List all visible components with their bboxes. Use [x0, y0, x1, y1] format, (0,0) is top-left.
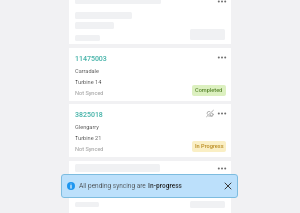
button[interactable]: 3825018: [69, 104, 231, 157]
button[interactable]: More options: [215, 51, 229, 63]
button[interactable]: Close: [222, 180, 234, 192]
staticText: Not Synced: [75, 146, 104, 153]
staticText: Completed: [195, 87, 223, 94]
button[interactable]: In Progress: [192, 141, 226, 152]
button[interactable]: All pending syncing are: [61, 174, 238, 198]
button[interactable]: 11475003: [69, 48, 231, 101]
staticText: 11475003: [75, 55, 107, 63]
staticText: Turbine 14: [75, 79, 102, 86]
button[interactable]: Completed: [192, 85, 226, 96]
staticText: In-progress: [148, 182, 182, 190]
staticText: In Progress: [195, 143, 224, 150]
button[interactable]: More options: [215, 162, 229, 174]
staticText: All pending syncing are: [79, 182, 148, 190]
staticText: Carradale: [75, 68, 99, 75]
staticText: Not Synced: [75, 90, 104, 97]
staticText: 3825018: [75, 111, 103, 119]
staticText: Glengarry: [75, 124, 99, 131]
button[interactable]: Not synced: [204, 108, 215, 119]
staticText: Turbine 21: [75, 135, 102, 142]
button[interactable]: More options: [215, 107, 229, 119]
button[interactable]: More options: [215, 0, 229, 7]
